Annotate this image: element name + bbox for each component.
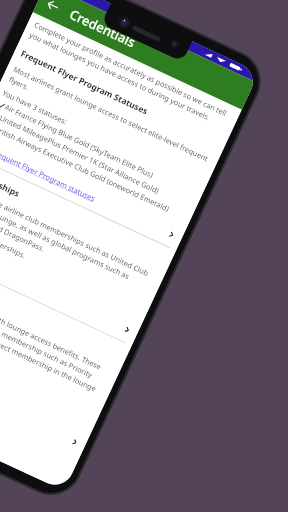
staticText: Some credit cards come with lounge acces… bbox=[0, 276, 114, 407]
staticText: British Airways Executive Club Gold (one… bbox=[0, 124, 171, 214]
button[interactable]: Edit memberships bbox=[0, 233, 134, 338]
staticText: Credentials bbox=[67, 5, 139, 51]
button[interactable]: Back bbox=[33, 0, 72, 25]
staticText: United MileagePlus Premier 1K (Star Alli… bbox=[0, 113, 161, 196]
staticText: Most airlines grant lounge access to sel… bbox=[7, 64, 213, 175]
button[interactable]: Edit Frequent Flyer Program statuses bbox=[0, 138, 178, 243]
button[interactable]: Edit credit cards bbox=[0, 346, 81, 450]
staticText: Air France Flying Blue Gold (SkyTeam Eli… bbox=[3, 102, 155, 180]
staticText: You have 0 memberships. bbox=[0, 213, 28, 261]
staticText: Complete your profile as accurately as p… bbox=[28, 20, 233, 130]
staticText: You have 3 statuses: bbox=[1, 88, 70, 127]
staticText: Frequent Flyer Program Statuses bbox=[19, 48, 151, 118]
staticText: These include airline club memberships s… bbox=[0, 181, 158, 302]
staticText: Memberships bbox=[0, 165, 22, 200]
staticText: Edit Frequent Flyer Program statuses bbox=[0, 140, 97, 204]
